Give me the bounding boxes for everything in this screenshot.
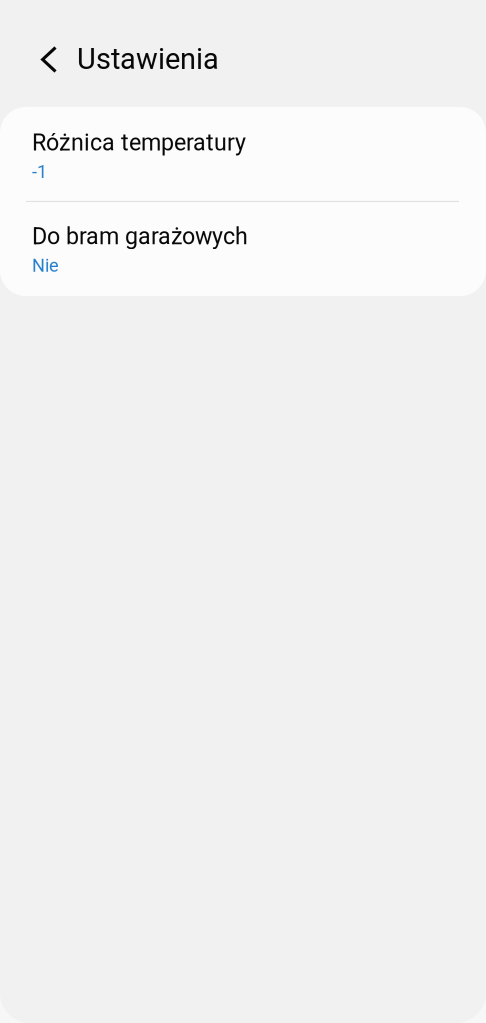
button[interactable]: Do bram garażowych <box>0 202 486 296</box>
staticText: Nie <box>32 255 59 276</box>
staticText: Ustawienia <box>77 42 219 76</box>
staticText: -1 <box>32 161 47 182</box>
button[interactable]: Różnica temperatury <box>0 107 486 201</box>
staticText: Do bram garażowych <box>32 223 248 250</box>
staticText: Różnica temperatury <box>32 129 246 156</box>
button[interactable]: Back <box>0 31 77 87</box>
